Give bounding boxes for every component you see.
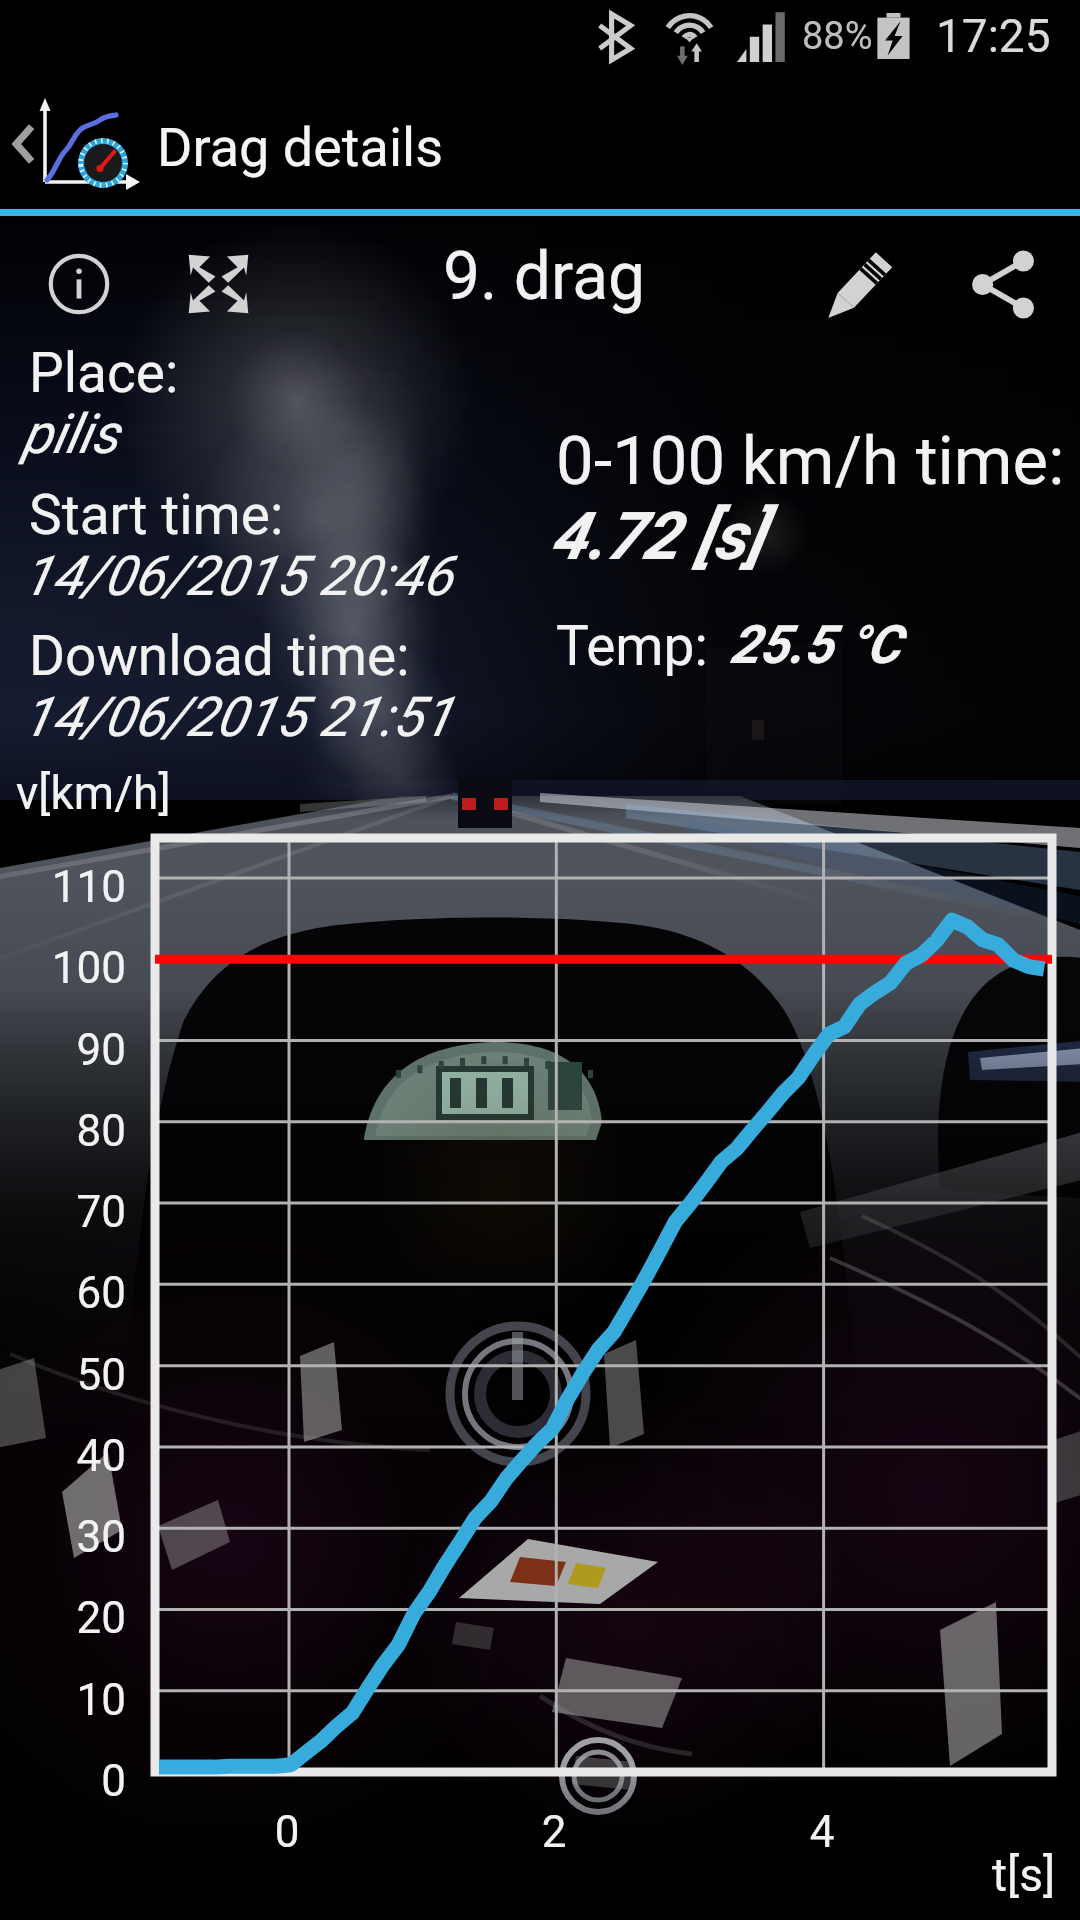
staticText: 20 [0, 1592, 126, 1644]
staticText: 40 [0, 1430, 126, 1482]
staticText: Temp: [556, 614, 708, 678]
staticText: 88% [802, 14, 873, 59]
staticText: 9. drag [443, 238, 646, 315]
staticText: 4.72 [s] [550, 498, 764, 575]
staticText: 0 [227, 1806, 347, 1858]
staticText: Start time: [29, 483, 284, 547]
staticText: Drag details [157, 116, 444, 179]
staticText: 70 [0, 1186, 126, 1238]
staticText: t[s] [992, 1848, 1056, 1902]
staticText: Download time: [29, 624, 410, 688]
staticText: 14/06/2015 20:46 [22, 544, 453, 608]
button[interactable]: Fullscreen [162, 228, 274, 340]
staticText: 4 [762, 1806, 882, 1858]
staticText: 17:25 [936, 9, 1051, 63]
staticText: v[km/h] [16, 766, 171, 820]
staticText: 0-100 km/h time: [556, 422, 1065, 501]
staticText: 10 [0, 1674, 126, 1726]
staticText: 2 [494, 1806, 614, 1858]
staticText: 110 [0, 861, 126, 913]
staticText: 60 [0, 1267, 126, 1319]
staticText: 14/06/2015 21:51 [22, 685, 453, 749]
staticText: 0 [0, 1755, 126, 1807]
staticText: pilis [22, 402, 119, 466]
staticText: 30 [0, 1511, 126, 1563]
staticText: 50 [0, 1349, 126, 1401]
button[interactable]: Edit [800, 226, 922, 338]
button[interactable]: Back [0, 78, 160, 202]
staticText: Place: [29, 341, 179, 405]
staticText: 80 [0, 1105, 126, 1157]
button[interactable]: Info [22, 228, 136, 340]
staticText: 25.5 °C [730, 614, 901, 676]
staticText: 100 [0, 942, 126, 994]
staticText: 90 [0, 1024, 126, 1076]
button[interactable]: Share [946, 228, 1060, 340]
